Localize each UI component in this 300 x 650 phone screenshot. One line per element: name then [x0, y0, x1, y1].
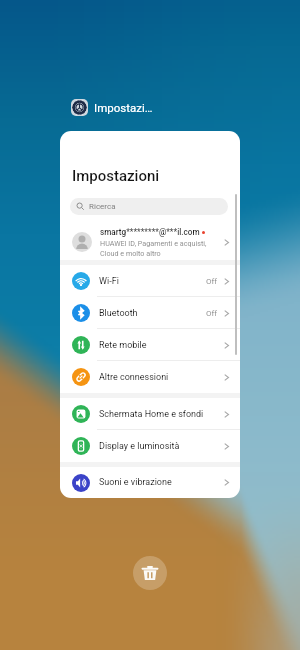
button[interactable]: Altre connessioni — [60, 361, 240, 393]
button[interactable]: Ricerca — [70, 198, 228, 215]
staticText: HUAWEI ID, Pagamenti e acquisti, Cloud e… — [100, 239, 207, 257]
staticText: Impostazi… — [94, 101, 153, 114]
button[interactable]: Display e luminosità — [60, 430, 240, 462]
staticText: Off — [206, 309, 218, 318]
staticText: smartg*********@***il.com — [100, 227, 200, 237]
button[interactable]: Rete mobile — [60, 329, 240, 361]
staticText: Display e luminosità — [99, 441, 180, 452]
button[interactable]: Clear all — [133, 556, 167, 590]
staticText: Altre connessioni — [99, 372, 169, 383]
staticText: Wi-Fi — [99, 276, 119, 287]
staticText: Suoni e vibrazione — [99, 477, 172, 488]
staticText: Schermata Home e sfondi — [99, 409, 204, 420]
staticText: Impostazioni — [72, 167, 160, 185]
button[interactable]: Bluetooth — [60, 297, 240, 329]
staticText: Bluetooth — [99, 308, 138, 319]
button[interactable]: Suoni e vibrazione — [60, 467, 240, 498]
button[interactable]: smartg*********@***il.com — [60, 224, 240, 260]
staticText: Rete mobile — [99, 340, 147, 351]
button[interactable]: Wi-Fi — [60, 265, 240, 297]
staticText: Off — [206, 277, 218, 286]
button[interactable]: Schermata Home e sfondi — [60, 398, 240, 430]
staticText: Ricerca — [89, 202, 116, 211]
